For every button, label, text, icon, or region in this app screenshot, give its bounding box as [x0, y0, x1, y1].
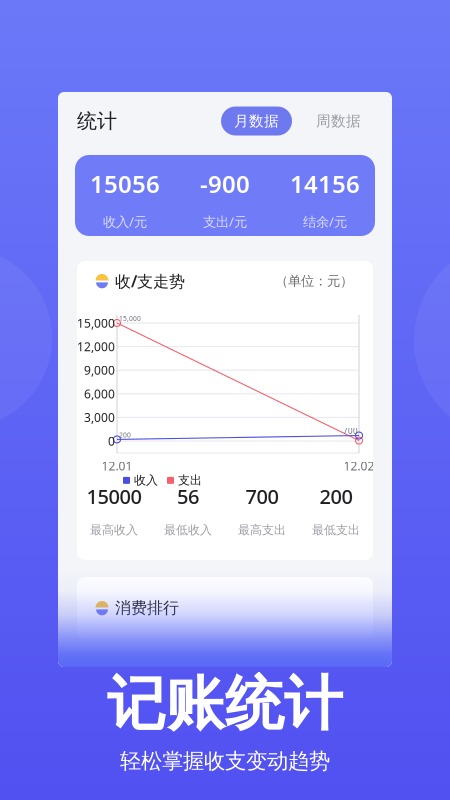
staticText: 6,000: [84, 386, 115, 402]
staticText: 收入: [134, 473, 158, 488]
staticText: 收入/元: [103, 213, 147, 230]
staticText: 月数据: [234, 112, 279, 130]
staticText: 9,000: [84, 362, 115, 378]
button[interactable]: 消费排行: [77, 577, 373, 639]
staticText: -900: [200, 168, 250, 200]
staticText: 记账统计: [107, 668, 343, 740]
staticText: 结余/元: [303, 213, 347, 230]
staticText: 支出/元: [203, 213, 247, 230]
staticText: 14156: [290, 168, 360, 200]
staticText: 700: [343, 425, 358, 436]
staticText: 0: [108, 433, 115, 449]
staticText: 收/支走势: [115, 270, 185, 292]
staticText: （单位：元）: [275, 273, 353, 289]
staticText: 3,000: [84, 409, 115, 425]
staticText: 15000: [86, 483, 141, 510]
staticText: 支出: [178, 473, 202, 488]
staticText: 最高支出: [238, 523, 286, 537]
staticText: 周数据: [316, 112, 361, 130]
staticText: 消费排行: [115, 598, 179, 618]
staticText: 统计: [77, 109, 117, 133]
staticText: 200: [319, 483, 352, 510]
staticText: 700: [245, 483, 278, 510]
staticText: 15,000: [77, 315, 115, 331]
staticText: 12.01: [101, 458, 132, 474]
staticText: 最低收入: [164, 523, 212, 537]
button[interactable]: 周数据: [316, 106, 361, 135]
staticText: 200: [119, 430, 131, 439]
staticText: 56: [177, 483, 199, 510]
button[interactable]: 月数据: [221, 106, 292, 135]
staticText: 15056: [90, 168, 160, 200]
staticText: 轻松掌握收支变动趋势: [120, 748, 330, 774]
staticText: 15,000: [119, 314, 141, 323]
staticText: 最低支出: [312, 523, 360, 537]
staticText: 最高收入: [90, 523, 138, 537]
staticText: 12,000: [77, 339, 115, 354]
staticText: 12.02: [343, 458, 374, 474]
